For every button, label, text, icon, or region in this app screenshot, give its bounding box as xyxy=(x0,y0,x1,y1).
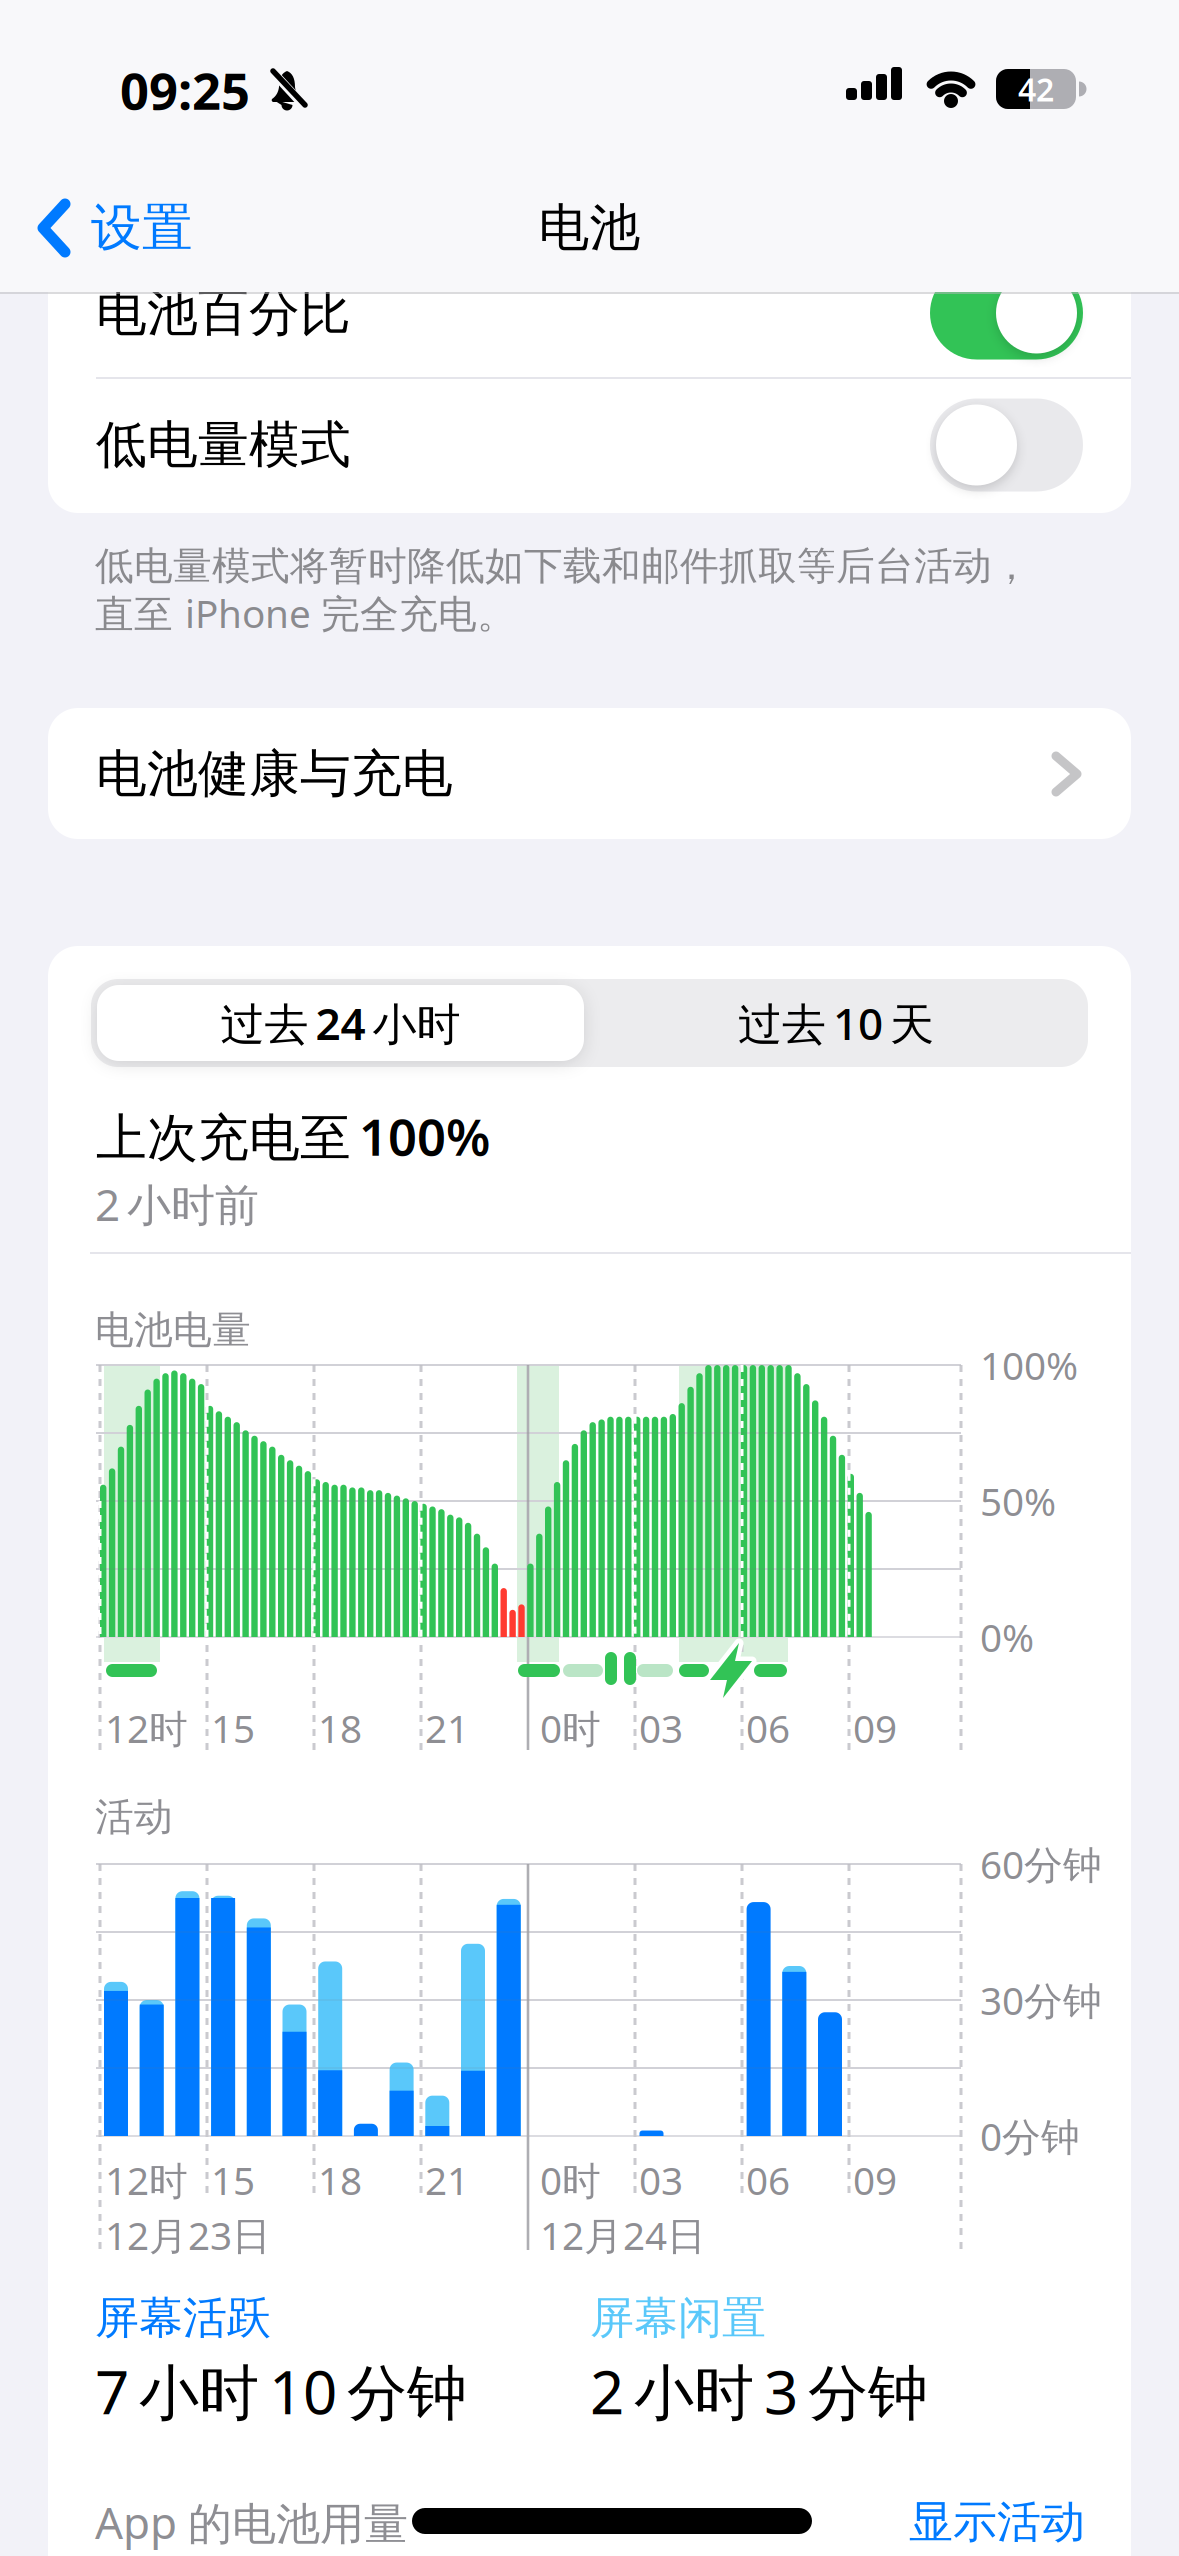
button[interactable]: 过去 10 天 xyxy=(591,985,1081,1061)
staticText: 21 xyxy=(425,2154,469,2206)
staticText: 03 xyxy=(639,2154,683,2206)
staticText: 过去 24 小时 xyxy=(220,994,460,1052)
button[interactable]: 电池健康与充电 xyxy=(48,708,1131,839)
staticText: 7 小时 10 分钟 xyxy=(95,2351,467,2431)
staticText: 12时 xyxy=(105,2154,188,2206)
staticText: 电池健康与充电 xyxy=(96,743,453,805)
button[interactable]: 设置 xyxy=(37,197,193,259)
staticText: 21 xyxy=(425,1702,469,1754)
staticText: 上次充电至 100% xyxy=(96,1102,490,1170)
staticText: 电池电量 xyxy=(95,1306,251,1354)
staticText: 直至 iPhone 完全充电。 xyxy=(95,587,516,639)
staticText: 12时 xyxy=(105,1702,188,1754)
staticText: 2 小时前 xyxy=(95,1175,259,1233)
staticText: 06 xyxy=(746,1702,790,1754)
staticText: 06 xyxy=(746,2154,790,2206)
staticText: 0时 xyxy=(540,2154,601,2206)
staticText: 低电量模式 xyxy=(96,414,351,476)
staticText: 0% xyxy=(980,1611,1034,1663)
staticText: 100% xyxy=(980,1339,1078,1391)
button[interactable]: 电池百分比 xyxy=(930,266,1083,359)
button[interactable]: 低电量模式 xyxy=(930,398,1083,491)
button[interactable]: 过去 24 小时 xyxy=(97,985,584,1061)
staticText: 低电量模式将暂时降低如下载和邮件抓取等后台活动， xyxy=(95,542,1031,590)
staticText: 09 xyxy=(853,1702,897,1754)
staticText: 09 xyxy=(853,2154,897,2206)
staticText: 09:25 xyxy=(120,56,250,124)
staticText: 15 xyxy=(211,2154,255,2206)
staticText: 电池百分比 xyxy=(96,282,351,344)
staticText: 12月23日 xyxy=(105,2209,271,2261)
staticText: 50% xyxy=(980,1475,1056,1527)
staticText: 18 xyxy=(318,2154,362,2206)
staticText: 12月24日 xyxy=(540,2209,706,2261)
staticText: 过去 10 天 xyxy=(738,994,934,1052)
staticText: 屏幕闲置 xyxy=(590,2291,766,2345)
staticText: 42 xyxy=(1018,68,1054,110)
staticText: 电池 xyxy=(538,197,640,259)
staticText: 60分钟 xyxy=(980,1838,1102,1890)
staticText: 03 xyxy=(639,1702,683,1754)
staticText: 30分钟 xyxy=(980,1974,1102,2026)
staticText: 显示活动 xyxy=(909,2495,1085,2549)
staticText: 设置 xyxy=(91,197,193,259)
button[interactable]: 显示活动 xyxy=(865,2487,1085,2556)
staticText: 18 xyxy=(318,1702,362,1754)
staticText: 屏幕活跃 xyxy=(95,2291,271,2345)
staticText: 0时 xyxy=(540,1702,601,1754)
staticText: 活动 xyxy=(95,1793,173,1841)
staticText: 0分钟 xyxy=(980,2110,1080,2162)
staticText: App 的电池用量 xyxy=(95,2493,408,2551)
staticText: 15 xyxy=(211,1702,255,1754)
staticText: 2 小时 3 分钟 xyxy=(590,2351,928,2431)
